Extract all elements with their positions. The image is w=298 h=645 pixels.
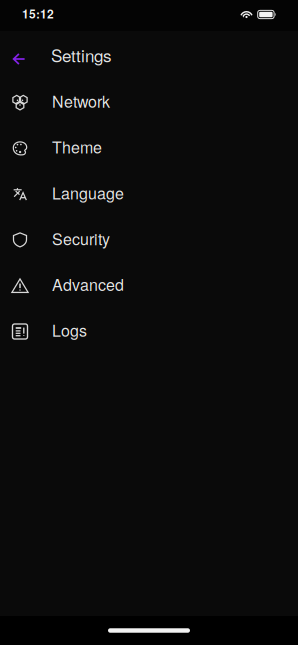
- staticText: Network: [52, 89, 110, 112]
- staticText: Advanced: [52, 273, 124, 295]
- button[interactable]: Logs: [0, 307, 298, 353]
- staticText: Settings: [51, 43, 112, 67]
- button[interactable]: Network: [0, 78, 298, 124]
- staticText: 15:12: [22, 5, 54, 22]
- button[interactable]: Language: [0, 170, 298, 215]
- button[interactable]: Security: [0, 215, 298, 261]
- staticText: Logs: [52, 318, 87, 341]
- staticText: Theme: [52, 135, 102, 158]
- button[interactable]: Back: [4, 37, 34, 71]
- staticText: Security: [52, 227, 110, 250]
- button[interactable]: Theme: [0, 124, 298, 170]
- staticText: Language: [52, 181, 124, 204]
- button[interactable]: Advanced: [0, 261, 298, 307]
